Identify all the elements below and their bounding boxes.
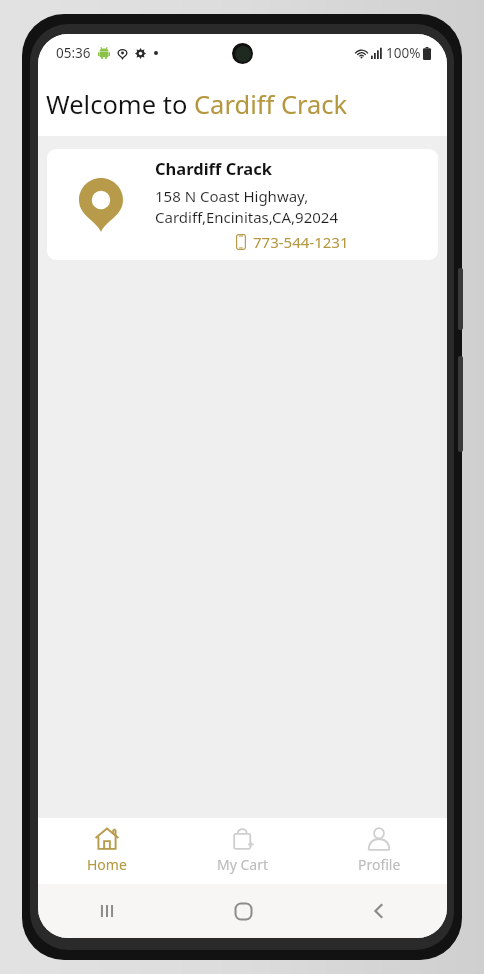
button[interactable]: Back [311, 884, 447, 938]
staticText: Cardiff,Encinitas,CA,92024 [155, 207, 339, 227]
button[interactable]: Home [175, 884, 311, 938]
button[interactable]: Chardiff Crack [47, 149, 438, 260]
staticText: 100% [386, 44, 421, 62]
staticText: Cardiff Crack [194, 87, 348, 122]
staticText: My Cart [217, 855, 269, 874]
staticText: Profile [358, 855, 401, 874]
staticText: 773-544-1231 [253, 232, 349, 252]
button[interactable]: Home [38, 818, 175, 884]
staticText: Chardiff Crack [155, 157, 272, 179]
button[interactable]: Recent apps [38, 884, 175, 938]
staticText: Home [87, 855, 127, 874]
button[interactable]: Profile [311, 818, 447, 884]
staticText: 05:36 [56, 44, 91, 62]
button[interactable]: My Cart [175, 818, 311, 884]
staticText: 158 N Coast Highway, [155, 186, 309, 206]
staticText: Welcome to [46, 87, 194, 122]
